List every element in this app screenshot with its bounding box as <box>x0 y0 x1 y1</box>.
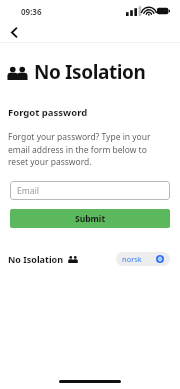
staticText: Email <box>17 185 39 197</box>
staticText: Forgot password <box>8 106 88 119</box>
staticText: norsk <box>122 254 142 264</box>
staticText: No Isolation <box>8 253 64 265</box>
staticText: Forgot your password? Type in your email… <box>8 131 166 167</box>
button[interactable]: norsk <box>116 252 170 266</box>
staticText: Submit <box>75 213 106 225</box>
button[interactable]: Email <box>10 181 170 200</box>
staticText: 09:36 <box>21 6 42 17</box>
button[interactable]: Submit <box>10 209 170 228</box>
button[interactable]: Back <box>4 22 24 42</box>
staticText: No Isolation <box>34 59 146 85</box>
